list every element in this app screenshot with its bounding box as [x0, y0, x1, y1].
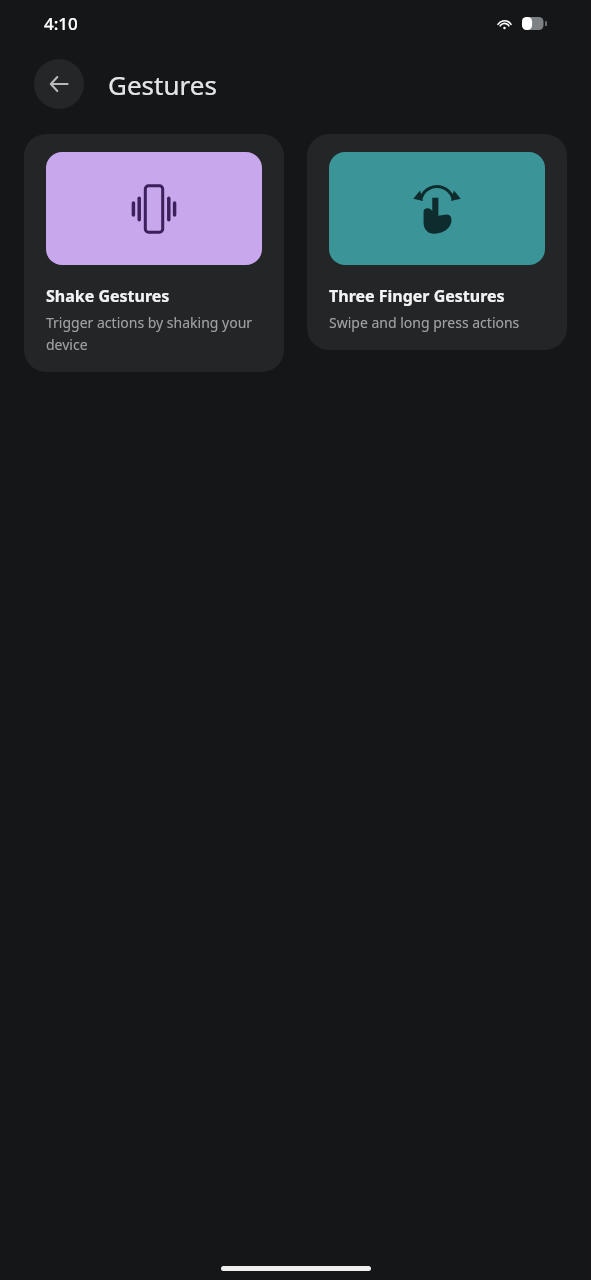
staticText: Swipe and long press actions — [329, 313, 520, 332]
staticText: Gestures — [108, 67, 217, 102]
staticText: Three Finger Gestures — [329, 285, 505, 307]
staticText: Trigger actions by shaking your device — [46, 313, 262, 354]
staticText: 4:10 — [44, 12, 78, 35]
button[interactable]: Three Finger Gestures — [307, 134, 567, 350]
button[interactable]: Shake Gestures — [24, 134, 284, 372]
button[interactable]: Back — [34, 59, 84, 109]
staticText: Shake Gestures — [46, 285, 170, 307]
